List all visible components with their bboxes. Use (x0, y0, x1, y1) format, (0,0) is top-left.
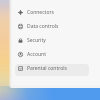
staticText: Connectors (27, 9, 54, 16)
button[interactable]: Parental controls (12, 61, 100, 75)
staticText: Security (27, 37, 46, 44)
button[interactable]: Connectors (12, 5, 100, 19)
staticText: Parental controls (27, 65, 67, 72)
staticText: Account (27, 51, 47, 58)
button[interactable]: Security (12, 33, 100, 47)
button[interactable]: Data controls (12, 19, 100, 33)
button[interactable]: Account (12, 47, 100, 61)
staticText: Data controls (27, 23, 59, 30)
